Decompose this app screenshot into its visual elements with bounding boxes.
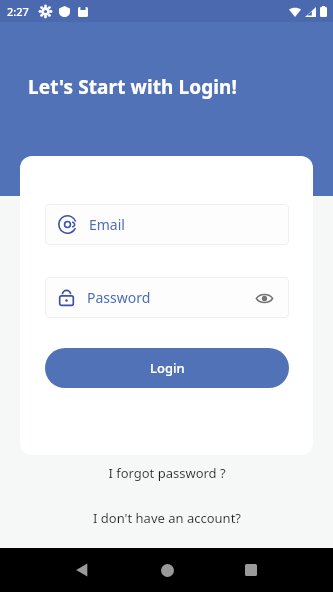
staticText: Login <box>150 359 185 377</box>
staticText: Email <box>89 215 125 234</box>
button[interactable]: Show password <box>251 285 277 311</box>
button[interactable]: I don't have an account? <box>0 506 333 530</box>
button[interactable]: Home <box>147 550 187 590</box>
button[interactable]: Back <box>62 550 102 590</box>
button[interactable]: I forgot password ? <box>0 461 333 485</box>
button[interactable]: Password <box>45 277 289 318</box>
button[interactable]: Recent apps <box>231 550 271 590</box>
button[interactable]: Email <box>45 204 289 245</box>
button[interactable]: Login <box>45 348 289 388</box>
staticText: I don't have an account? <box>93 509 241 527</box>
staticText: Password <box>87 288 151 307</box>
staticText: 2:27 <box>7 4 29 19</box>
staticText: Let's Start with Login! <box>28 74 238 100</box>
staticText: I forgot password ? <box>108 464 226 482</box>
